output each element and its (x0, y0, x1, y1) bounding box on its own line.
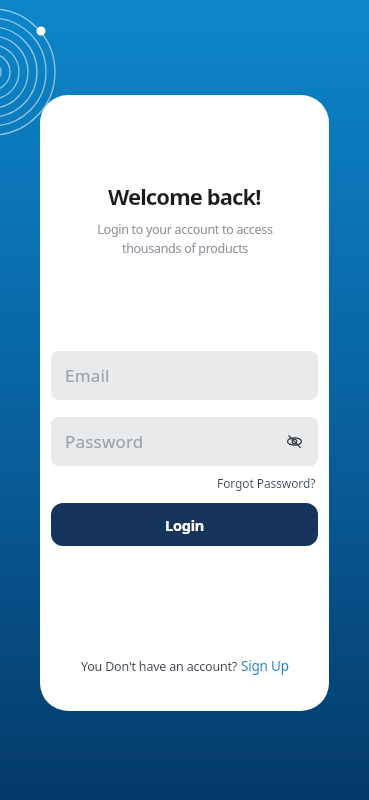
staticText: Sign Up (241, 657, 289, 675)
staticText: Forgot Password? (217, 475, 316, 491)
button[interactable]: Email (51, 351, 318, 400)
staticText: Email (65, 364, 110, 387)
staticText: You Don't have an account? (81, 658, 241, 675)
button[interactable]: You Don't have an account? (81, 657, 289, 675)
button[interactable]: Password (51, 417, 318, 466)
button[interactable] (287, 434, 302, 449)
staticText: Login (165, 515, 205, 535)
staticText: Password (65, 430, 144, 453)
button[interactable]: Forgot Password? (217, 475, 316, 491)
staticText: Login to your account to access thousand… (97, 221, 273, 257)
staticText: Welcome back! (108, 181, 261, 211)
button[interactable]: Login (51, 503, 318, 546)
